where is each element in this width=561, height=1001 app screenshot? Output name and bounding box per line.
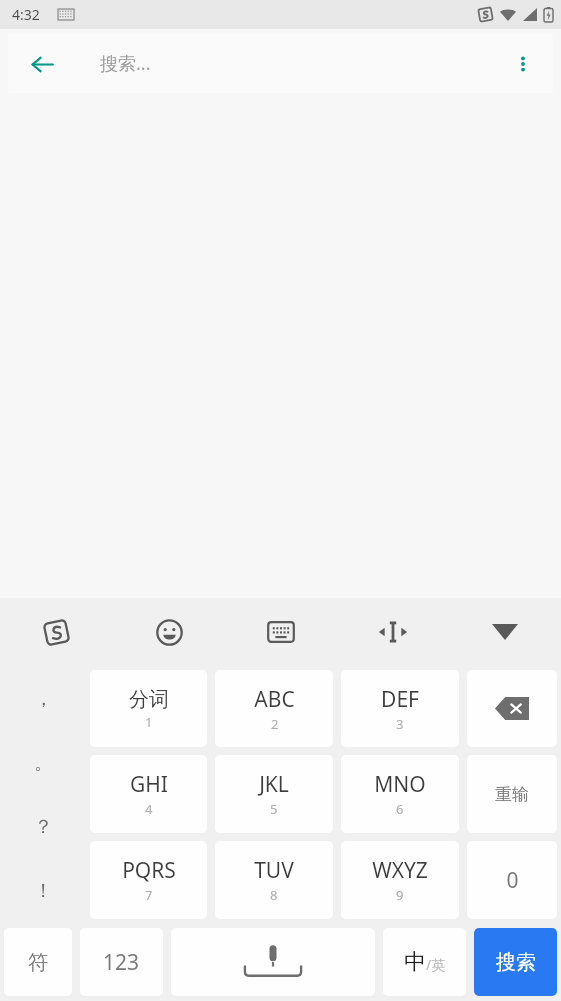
staticText: /英	[426, 955, 446, 974]
button[interactable]: DEF	[341, 670, 459, 747]
staticText: 搜索	[496, 950, 536, 975]
button[interactable]: 123	[80, 928, 163, 996]
staticText: 重输	[495, 784, 529, 805]
button[interactable]: Keyboard layout	[225, 598, 337, 666]
button[interactable]: Hide keyboard	[449, 598, 561, 666]
staticText: JKL	[259, 770, 289, 799]
staticText: 8	[270, 886, 278, 904]
button[interactable]: 0	[467, 841, 557, 919]
staticText: GHI	[130, 770, 168, 799]
staticText: DEF	[381, 685, 419, 714]
button[interactable]: WXYZ	[341, 841, 459, 919]
staticText: 搜索...	[100, 51, 151, 76]
staticText: 5	[270, 800, 278, 818]
button[interactable]: GHI	[90, 755, 207, 833]
staticText: 。	[34, 751, 53, 775]
button[interactable]: 搜索	[474, 928, 557, 996]
button[interactable]: 符	[4, 928, 72, 996]
staticText: 4	[145, 800, 153, 818]
staticText: ABC	[254, 685, 295, 714]
button[interactable]: More options	[501, 42, 545, 86]
button[interactable]: Backspace	[467, 670, 557, 747]
button[interactable]: JKL	[215, 755, 333, 833]
button[interactable]: Back	[18, 40, 66, 88]
staticText: ！	[34, 879, 53, 903]
button[interactable]: MNO	[341, 755, 459, 833]
button[interactable]: ？	[0, 795, 86, 859]
button[interactable]: 重输	[467, 755, 557, 833]
button[interactable]: ！	[0, 859, 86, 923]
staticText: 中	[404, 948, 426, 976]
staticText: 1	[145, 713, 153, 731]
button[interactable]: 。	[0, 731, 86, 795]
staticText: MNO	[374, 770, 426, 799]
staticText: PQRS	[122, 856, 176, 885]
button[interactable]: Sogou input	[0, 598, 113, 666]
button[interactable]: Move cursor	[337, 598, 449, 666]
button[interactable]: 分词	[90, 670, 207, 747]
staticText: 符	[28, 950, 48, 975]
staticText: 7	[145, 886, 153, 904]
staticText: WXYZ	[372, 856, 428, 885]
staticText: 6	[396, 800, 404, 818]
staticText: 0	[506, 866, 519, 895]
button[interactable]: PQRS	[90, 841, 207, 919]
staticText: 4:32	[12, 5, 40, 24]
staticText: 2	[271, 715, 279, 733]
button[interactable]: ABC	[215, 670, 333, 747]
staticText: ，	[34, 687, 53, 711]
staticText: 9	[396, 886, 404, 904]
staticText: 123	[103, 948, 140, 977]
staticText: TUV	[254, 856, 294, 885]
button[interactable]: ，	[0, 666, 86, 731]
staticText: 3	[396, 715, 404, 733]
staticText: 分词	[129, 687, 169, 712]
staticText: ？	[34, 815, 53, 839]
button[interactable]: 中	[383, 928, 466, 996]
button[interactable]: TUV	[215, 841, 333, 919]
button[interactable]: Voice input / Space	[171, 928, 375, 996]
button[interactable]: Emoji	[113, 598, 225, 666]
